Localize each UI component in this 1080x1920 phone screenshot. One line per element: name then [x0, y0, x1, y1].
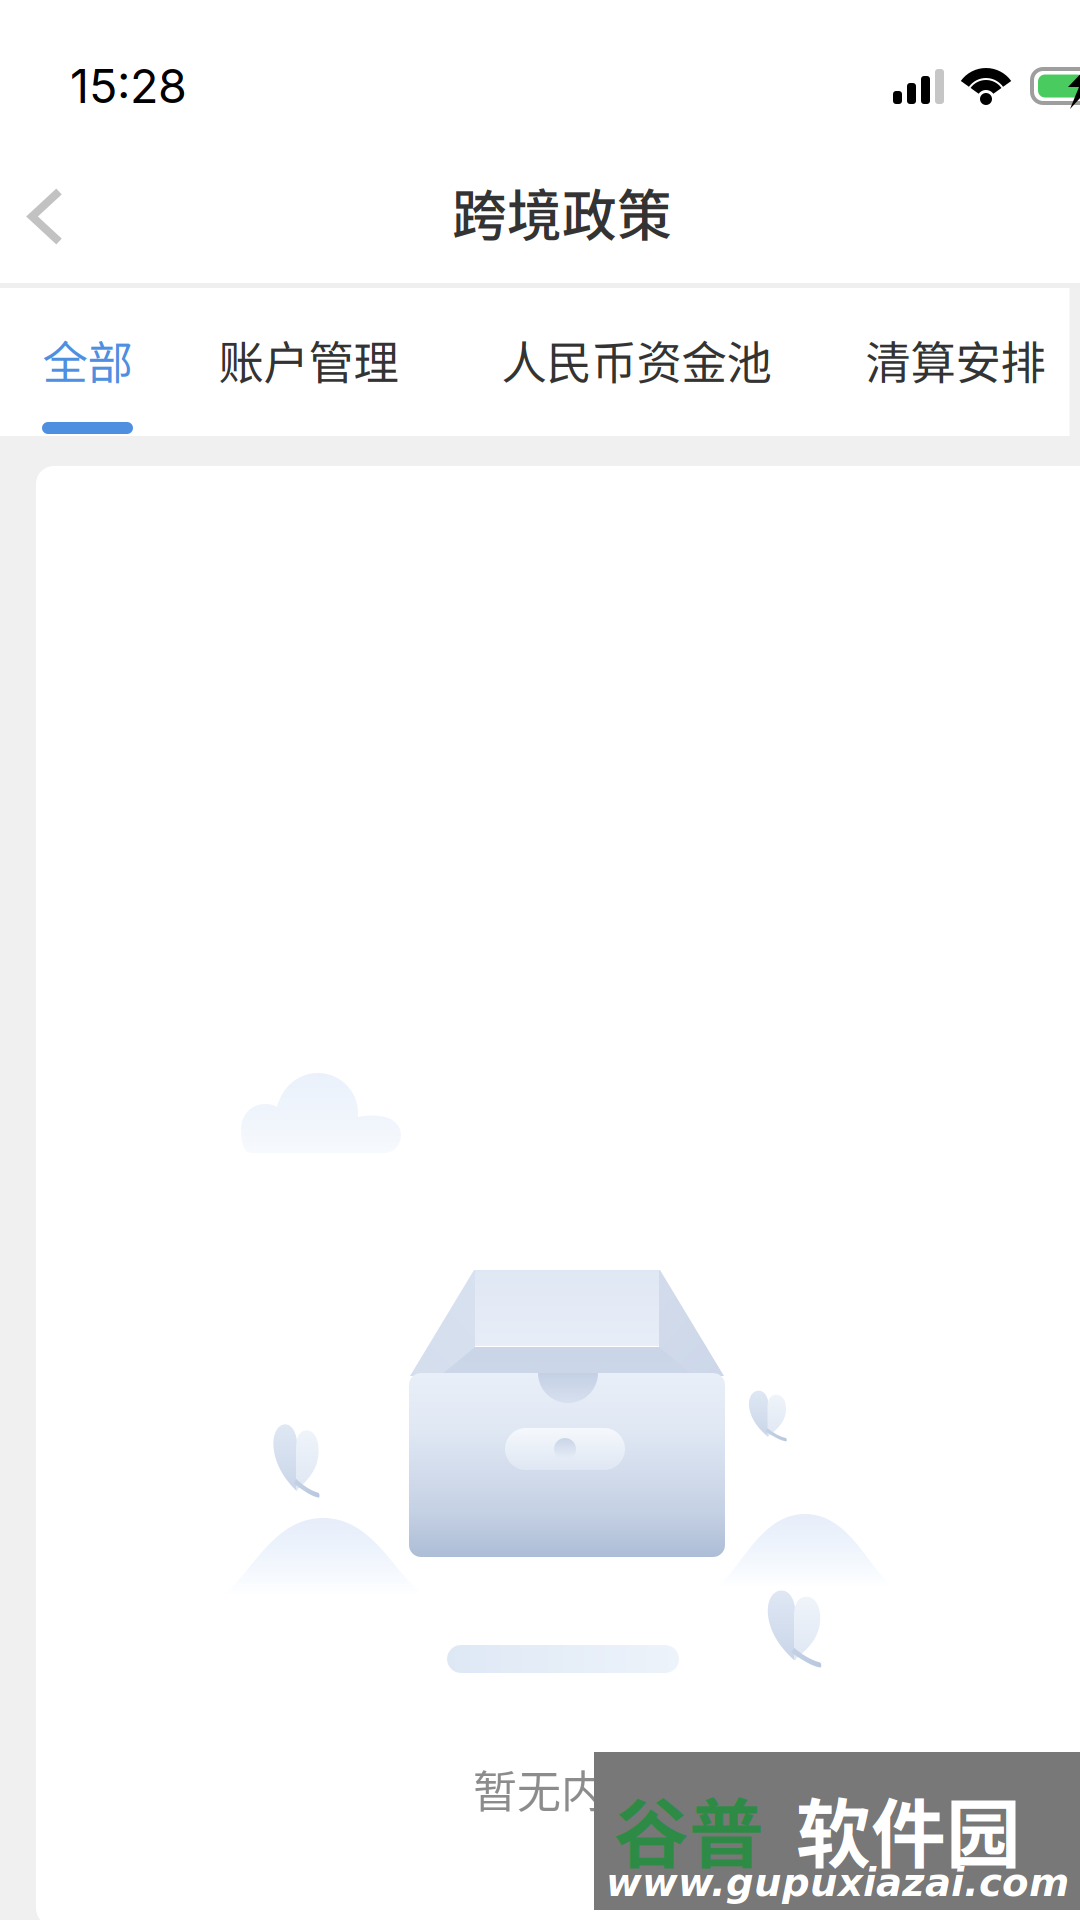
staticText: 软件园: [796, 1775, 1021, 1883]
button[interactable]: 人民币资金池: [456, 288, 816, 436]
button[interactable]: 账户管理: [173, 288, 443, 436]
staticText: 跨境政策: [452, 172, 672, 251]
button[interactable]: Back: [0, 150, 110, 283]
button[interactable]: 清算安排: [820, 288, 1080, 436]
staticText: 谷普: [614, 1775, 764, 1883]
button[interactable]: 全部: [22, 288, 152, 436]
staticText: www.gupuxiazai.com: [606, 1860, 1069, 1905]
staticText: 暂无内容: [473, 1757, 649, 1821]
staticText: 全部: [42, 327, 132, 393]
staticText: 15:28: [70, 58, 187, 114]
staticText: 账户管理: [218, 327, 398, 393]
staticText: 清算安排: [865, 327, 1045, 393]
staticText: 人民币资金池: [501, 327, 771, 393]
